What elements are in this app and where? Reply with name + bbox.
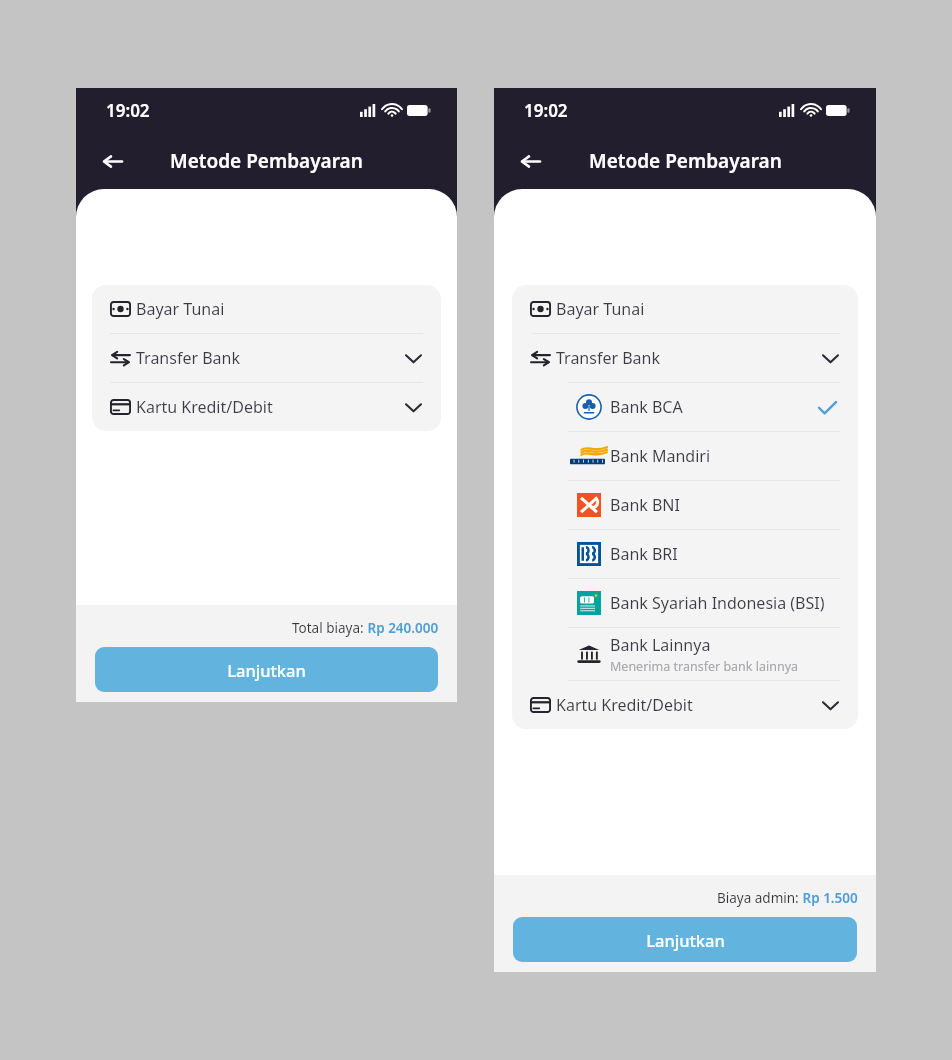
button[interactable]: Bank Mandiri bbox=[512, 432, 858, 480]
button[interactable]: Lanjutkan bbox=[95, 647, 438, 692]
staticText: Bank Lainnya bbox=[610, 634, 711, 656]
button[interactable]: Bayar Tunai bbox=[512, 285, 858, 333]
staticText: Bank Syariah Indonesia (BSI) bbox=[610, 592, 825, 614]
button[interactable]: Back bbox=[510, 141, 550, 181]
button[interactable]: Bank Syariah Indonesia (BSI) bbox=[512, 579, 858, 627]
button[interactable]: Lanjutkan bbox=[513, 917, 857, 962]
staticText: Total biaya: bbox=[292, 619, 364, 637]
staticText: Bayar Tunai bbox=[136, 298, 225, 320]
button[interactable]: Bank BNI bbox=[512, 481, 858, 529]
staticText: Metode Pembayaran bbox=[589, 148, 782, 174]
staticText: Menerima transfer bank lainnya bbox=[610, 658, 799, 675]
staticText: Kartu Kredit/Debit bbox=[556, 694, 693, 716]
button[interactable]: Back bbox=[92, 141, 132, 181]
staticText: 19:02 bbox=[106, 99, 150, 122]
button[interactable]: Bank BCA bbox=[512, 383, 858, 431]
button[interactable]: Kartu Kredit/Debit bbox=[92, 383, 441, 431]
staticText: Lanjutkan bbox=[227, 659, 306, 681]
staticText: Biaya admin: bbox=[717, 889, 799, 907]
staticText: Bank BRI bbox=[610, 543, 678, 565]
staticText: Rp 1.500 bbox=[799, 889, 858, 907]
staticText: Rp 240.000 bbox=[364, 619, 439, 637]
staticText: Lanjutkan bbox=[646, 929, 725, 951]
button[interactable]: Transfer Bank bbox=[92, 334, 441, 382]
staticText: Metode Pembayaran bbox=[170, 148, 363, 174]
staticText: Bank BNI bbox=[610, 494, 680, 516]
button[interactable]: Bayar Tunai bbox=[92, 285, 441, 333]
staticText: Transfer Bank bbox=[556, 347, 661, 369]
button[interactable]: Bank BRI bbox=[512, 530, 858, 578]
staticText: Transfer Bank bbox=[136, 347, 241, 369]
button[interactable]: Transfer Bank bbox=[512, 334, 858, 382]
staticText: Bank BCA bbox=[610, 396, 683, 418]
button[interactable]: Kartu Kredit/Debit bbox=[512, 681, 858, 729]
staticText: Kartu Kredit/Debit bbox=[136, 396, 273, 418]
staticText: Bayar Tunai bbox=[556, 298, 645, 320]
button[interactable]: Bank Lainnya bbox=[512, 628, 858, 680]
staticText: Bank Mandiri bbox=[610, 445, 711, 467]
staticText: 19:02 bbox=[524, 99, 568, 122]
